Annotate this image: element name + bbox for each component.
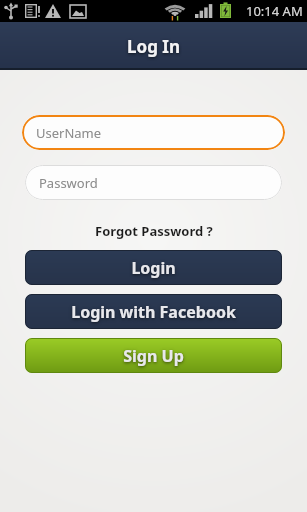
- staticText: Password: [39, 174, 98, 192]
- staticText: Sign Up: [123, 345, 184, 367]
- staticText: Forgot Password ?: [95, 222, 213, 240]
- staticText: Log In: [127, 35, 180, 58]
- staticText: 10:14 AM: [246, 2, 303, 20]
- button[interactable]: Sign Up: [25, 338, 282, 373]
- staticText: Login: [131, 257, 176, 279]
- staticText: UserName: [36, 124, 102, 142]
- button[interactable]: Login: [25, 250, 282, 285]
- button[interactable]: Login with Facebook: [25, 294, 282, 329]
- button[interactable]: UserName: [22, 115, 285, 150]
- button[interactable]: Password: [25, 165, 282, 200]
- button[interactable]: Forgot Password ?: [22, 222, 285, 240]
- staticText: Login with Facebook: [71, 301, 236, 323]
